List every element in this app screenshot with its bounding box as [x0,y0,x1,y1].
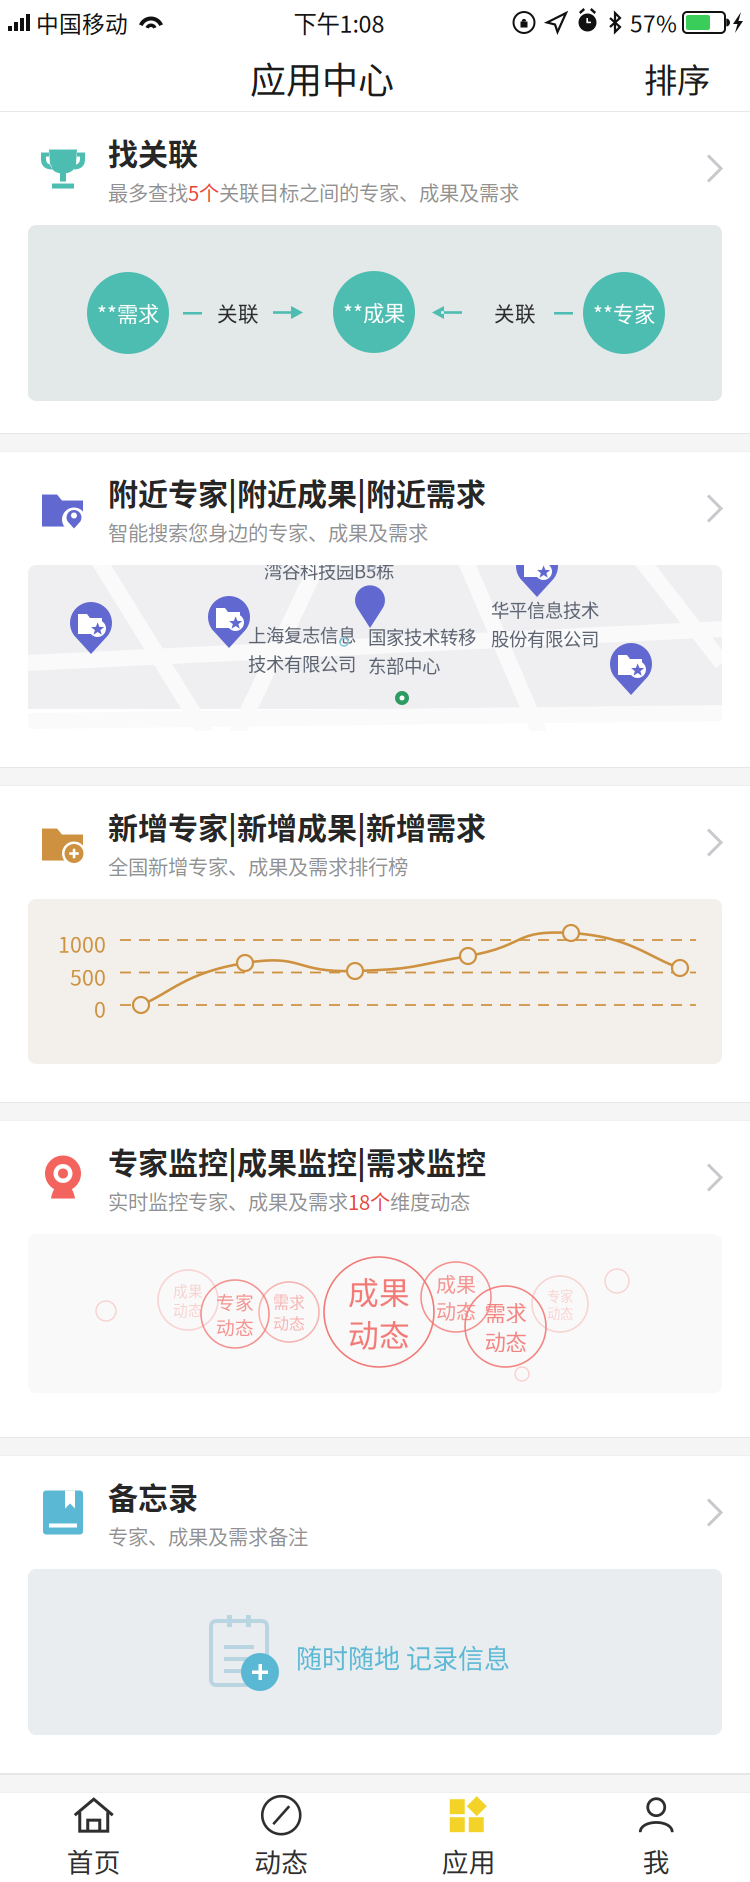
staticText: 动态 [484,1325,526,1356]
staticText: 成果 [348,1269,410,1313]
staticText: 全国新增专家、成果及需求排行榜 [108,851,408,881]
staticText: 1000 [58,928,106,959]
button[interactable]: 应用 [375,1793,562,1882]
staticText: 下午1:08 [293,6,384,39]
button[interactable]: 首页 [0,1793,187,1882]
staticText: 应用中心 [250,52,394,104]
staticText: 国家技术转移 [368,623,476,650]
staticText: 东部中心 [368,652,440,678]
staticText: 动态 [348,1311,410,1355]
staticText: 动态 [173,1299,203,1320]
staticText: 实时监控专家、成果及需求 [108,1186,348,1216]
button[interactable]: 我 [562,1793,750,1882]
staticText: 上海复志信息 [248,621,356,648]
staticText: 动态 [547,1303,573,1322]
staticText: 动态 [216,1313,254,1340]
staticText: 最多查找 [108,177,188,207]
staticText: 18个 [348,1186,390,1216]
staticText: **专家 [593,298,655,328]
staticText: 维度动态 [390,1186,470,1216]
staticText: 专家 [216,1288,254,1315]
staticText: 华平信息技术 [491,596,599,623]
button[interactable]: 附近专家|附近成果|附近需求 [0,452,750,565]
staticText: 成果 [173,1280,203,1301]
staticText: 关联 [494,298,536,328]
button[interactable]: 动态 [187,1793,375,1882]
staticText: 动态 [273,1311,305,1334]
staticText: 找关联 [108,130,198,173]
staticText: 关联 [217,298,259,328]
staticText: 专家、成果及需求备注 [108,1521,308,1551]
staticText: 0 [94,993,106,1024]
button[interactable]: 备忘录 [0,1456,750,1569]
staticText: **需求 [97,298,159,328]
staticText: 5个 [188,177,219,207]
staticText: 智能搜索您身边的专家、成果及需求 [108,517,428,547]
staticText: 专家监控|成果监控|需求监控 [108,1139,486,1182]
staticText: 应用 [442,1841,496,1880]
staticText: 新增专家|新增成果|新增需求 [108,804,486,847]
staticText: 股份有限公司 [491,625,599,651]
staticText: 技术有限公司 [248,650,356,676]
staticText: 需求 [484,1297,526,1327]
staticText: 我 [643,1841,670,1880]
staticText: 动态 [254,1841,308,1880]
staticText: 动态 [436,1296,476,1325]
staticText: 成果 [436,1269,476,1298]
staticText: 专家 [547,1286,573,1305]
staticText: 备忘录 [108,1474,198,1517]
staticText: 关联目标之间的专家、成果及需求 [219,177,519,207]
button[interactable]: 排序 [644,40,750,116]
staticText: 排序 [644,54,710,102]
staticText: 需求 [273,1290,305,1313]
staticText: 首页 [67,1841,121,1880]
button[interactable]: 找关联 [0,112,750,225]
staticText: 500 [70,961,106,992]
staticText: 附近专家|附近成果|附近需求 [108,470,486,513]
staticText: **成果 [343,297,405,327]
staticText: 湾谷科技园B5栋 [264,557,394,584]
button[interactable]: 专家监控|成果监控|需求监控 [0,1121,750,1234]
staticText: 随时随地 记录信息 [296,1638,510,1676]
staticText: 中国移动 [36,6,128,39]
staticText: 57% [630,6,677,39]
button[interactable]: 新增专家|新增成果|新增需求 [0,786,750,899]
